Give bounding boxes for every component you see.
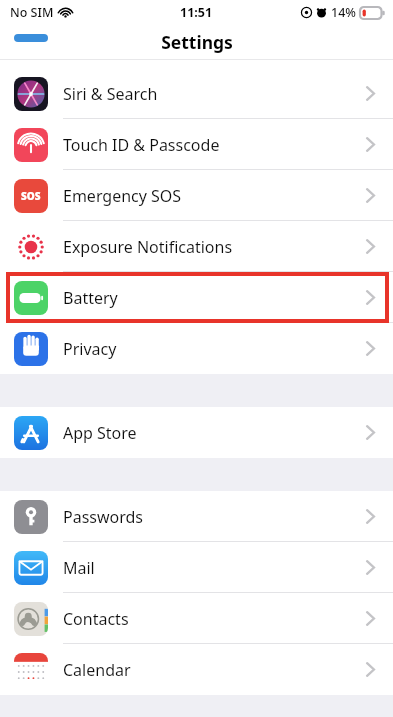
staticText: Settings xyxy=(161,30,233,54)
button[interactable]: SOS xyxy=(0,170,393,221)
button[interactable]: Siri & Search xyxy=(0,68,393,119)
button[interactable]: Privacy xyxy=(0,323,393,374)
staticText: Privacy xyxy=(63,338,117,360)
staticText: Emergency SOS xyxy=(63,185,182,207)
staticText: Calendar xyxy=(63,659,131,681)
staticText: Siri & Search xyxy=(63,83,158,105)
button[interactable]: Touch ID & Passcode xyxy=(0,119,393,170)
button[interactable]: Exposure Notifications xyxy=(0,221,393,272)
staticText: Contacts xyxy=(63,608,129,630)
button[interactable]: Contacts xyxy=(0,593,393,644)
staticText: 14% xyxy=(331,4,356,21)
staticText: Battery xyxy=(63,287,118,309)
staticText: 11:51 xyxy=(180,4,213,21)
button[interactable]: Mail xyxy=(0,542,393,593)
staticText: Passwords xyxy=(63,506,144,528)
button[interactable]: App Store xyxy=(0,407,393,458)
staticText: SOS xyxy=(21,189,41,203)
staticText: No SIM xyxy=(10,4,54,21)
staticText: Touch ID & Passcode xyxy=(63,134,220,156)
staticText: App Store xyxy=(63,422,137,444)
staticText: Exposure Notifications xyxy=(63,236,233,258)
button[interactable]: Calendar xyxy=(0,644,393,695)
staticText: Mail xyxy=(63,557,95,579)
button[interactable]: Battery xyxy=(0,272,393,323)
button[interactable]: Passwords xyxy=(0,491,393,542)
